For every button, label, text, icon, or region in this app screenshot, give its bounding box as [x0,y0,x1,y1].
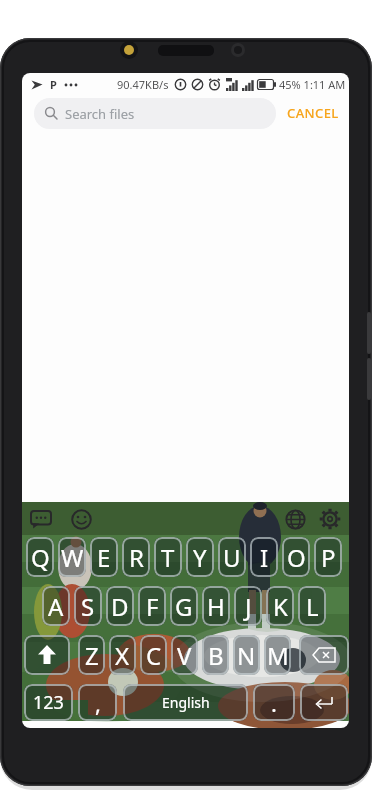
staticText: K [273,590,288,623]
button[interactable]: K [266,586,294,626]
staticText: Q [31,541,50,574]
staticText: F [146,590,159,623]
button[interactable]: 123 [24,684,73,721]
button[interactable]: G [170,586,198,626]
button[interactable]: V [171,635,198,675]
staticText: L [306,590,319,623]
button[interactable] [282,506,308,532]
button[interactable]: H [202,586,230,626]
button[interactable]: English [123,684,248,721]
button[interactable] [68,506,94,532]
staticText: S [81,590,95,623]
button[interactable]: L [298,586,326,626]
button[interactable]: R [122,537,150,577]
staticText: 45% 1:11 AM [279,77,346,92]
button[interactable]: M [264,635,291,675]
staticText: Y [193,541,207,574]
staticText: N [237,639,256,672]
button[interactable] [317,506,343,532]
staticText: J [245,590,252,623]
staticText: C [146,639,162,672]
button[interactable]: E [90,537,118,577]
staticText: A [48,590,64,623]
button[interactable]: Y [186,537,214,577]
button[interactable] [24,635,70,675]
button[interactable] [300,684,348,721]
button[interactable]: A [42,586,70,626]
staticText: R [129,541,144,574]
staticText: Z [85,639,99,672]
button[interactable]: CANCEL [287,104,339,122]
button[interactable] [299,635,349,675]
button[interactable]: , [78,684,117,721]
staticText: English [162,693,210,712]
button[interactable]: D [106,586,134,626]
button[interactable] [28,506,54,532]
button[interactable]: I [250,537,278,577]
staticText: B [208,639,224,672]
staticText: CANCEL [287,104,339,122]
button[interactable]: U [218,537,246,577]
button[interactable]: . [253,684,295,721]
staticText: , [95,688,101,718]
button[interactable]: T [154,537,182,577]
button[interactable]: F [138,586,166,626]
staticText: T [161,541,175,574]
button[interactable]: J [234,586,262,626]
staticText: E [97,541,111,574]
staticText: M [267,639,289,672]
staticText: Search files [65,105,135,123]
staticText: . [271,688,277,718]
staticText: I [260,541,269,574]
staticText: U [223,541,241,574]
staticText: D [111,590,129,623]
button[interactable]: C [140,635,167,675]
button[interactable]: Z [78,635,105,675]
staticText: P [321,541,336,574]
button[interactable]: Q [26,537,54,577]
staticText: 90.47KB/s [117,77,169,92]
staticText: V [177,639,192,672]
staticText: X [115,639,130,672]
staticText: W [61,541,84,574]
staticText: P [50,77,57,92]
staticText: H [207,590,225,623]
staticText: G [175,590,193,623]
button[interactable]: X [109,635,136,675]
button[interactable]: B [202,635,229,675]
button[interactable]: W [58,537,86,577]
button[interactable]: N [233,635,260,675]
button[interactable]: O [282,537,310,577]
staticText: O [287,541,306,574]
staticText: 123 [33,690,64,715]
button[interactable]: Search files [34,98,276,129]
button[interactable]: P [314,537,342,577]
button[interactable]: S [74,586,102,626]
